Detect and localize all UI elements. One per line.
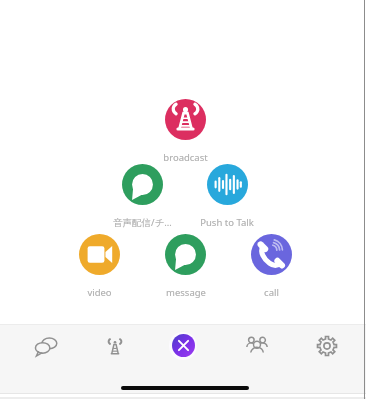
button[interactable]: Close bbox=[172, 334, 195, 357]
staticText: call bbox=[264, 286, 279, 299]
button[interactable]: Settings bbox=[304, 324, 350, 368]
button[interactable]: broadcast bbox=[142, 99, 228, 164]
button[interactable]: 音声配信/チ… bbox=[99, 164, 185, 229]
button[interactable]: Broadcast bbox=[92, 324, 138, 368]
button[interactable]: message bbox=[142, 234, 228, 299]
button[interactable]: video bbox=[56, 234, 142, 299]
staticText: message bbox=[166, 286, 206, 299]
staticText: Push to Talk bbox=[200, 216, 254, 229]
staticText: 音声配信/チ… bbox=[113, 216, 172, 229]
staticText: video bbox=[87, 286, 112, 299]
button[interactable]: call bbox=[228, 234, 314, 299]
button[interactable]: Chats bbox=[23, 324, 69, 368]
button[interactable]: Push to Talk bbox=[184, 164, 270, 229]
button[interactable]: Contacts bbox=[234, 324, 280, 368]
staticText: broadcast bbox=[163, 151, 208, 164]
